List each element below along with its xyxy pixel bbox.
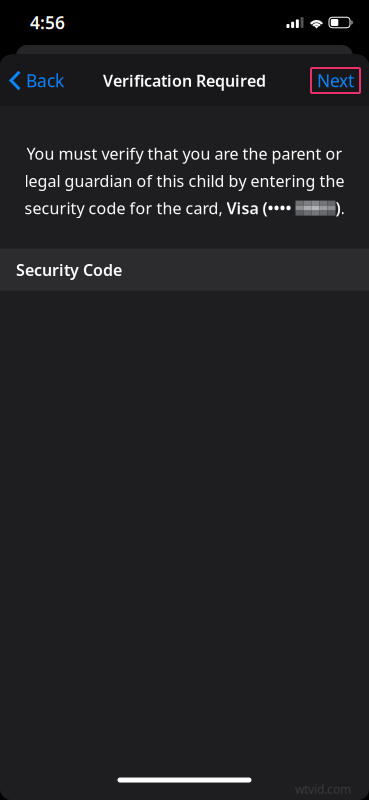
staticText: Back (26, 69, 64, 92)
staticText: Next (317, 69, 354, 92)
staticText: 4:56 (30, 11, 65, 34)
staticText: You must verify that you are the parent … (26, 143, 342, 164)
staticText: ) (335, 197, 340, 219)
staticText: Security Code (16, 259, 122, 280)
staticText: wtvid.com (295, 781, 351, 797)
staticText: Verification Required (103, 70, 266, 91)
staticText: Visa (•••• (226, 197, 295, 219)
staticText: security code for the card, (24, 197, 226, 219)
button[interactable]: Next (311, 68, 360, 93)
staticText: . (340, 197, 344, 219)
button[interactable]: Back (0, 62, 72, 99)
staticText: legal guardian of this child by entering… (24, 170, 344, 191)
